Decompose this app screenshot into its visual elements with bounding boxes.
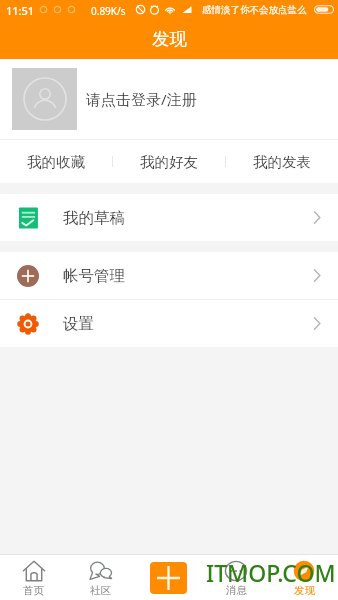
button[interactable]: Add post: [134, 555, 202, 600]
staticText: 社区: [90, 584, 111, 597]
staticText: ITMOP.COM: [206, 557, 336, 588]
button[interactable]: 消息: [202, 555, 270, 600]
staticText: 我的收藏: [27, 153, 85, 171]
staticText: 请点击登录/注册: [86, 89, 197, 109]
button[interactable]: 发现: [270, 555, 338, 600]
staticText: 11:51: [6, 3, 35, 18]
staticText: 我的发表: [253, 153, 311, 171]
staticText: 消息: [226, 584, 247, 597]
button[interactable]: 我的好友: [113, 140, 225, 183]
staticText: 我的好友: [140, 153, 198, 171]
button[interactable]: 我的草稿: [0, 194, 338, 241]
staticText: 帐号管理: [63, 266, 125, 286]
button[interactable]: 我的发表: [226, 140, 338, 183]
staticText: 我的草稿: [63, 208, 125, 228]
staticText: 感情淡了你不会放点盐么: [202, 4, 307, 16]
button[interactable]: 设置: [0, 300, 338, 347]
staticText: 0.89K/s: [91, 4, 126, 18]
button[interactable]: 我的收藏: [0, 140, 112, 183]
button[interactable]: 请点击登录/注册: [0, 59, 338, 139]
staticText: 发现: [294, 584, 315, 597]
staticText: 设置: [63, 314, 94, 334]
button[interactable]: 帐号管理: [0, 252, 338, 299]
staticText: 首页: [23, 584, 44, 597]
button[interactable]: 首页: [0, 555, 67, 600]
staticText: 发现: [152, 28, 187, 50]
button[interactable]: 社区: [67, 555, 134, 600]
